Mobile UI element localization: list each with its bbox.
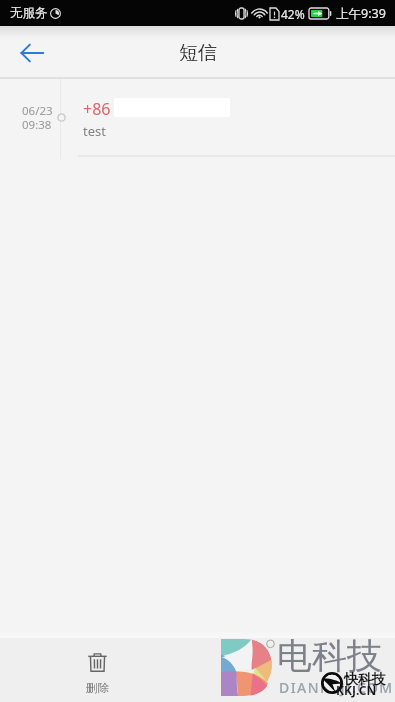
button[interactable]: Back <box>9 30 55 76</box>
staticText: 电科技 <box>277 634 382 678</box>
staticText: 42% <box>281 6 305 22</box>
staticText: KKJ.CN <box>336 682 377 698</box>
staticText: DIANKEJI.COM <box>279 678 394 697</box>
staticText: 删除 <box>86 681 109 695</box>
staticText: 06/23 <box>22 103 53 119</box>
staticText: 09:38 <box>22 117 52 133</box>
staticText: test <box>83 122 106 140</box>
button[interactable]: 删除 <box>74 648 121 700</box>
staticText: 快科技 <box>344 671 386 689</box>
staticText: 上午9:39 <box>336 5 386 22</box>
staticText: 无服务 <box>10 5 48 21</box>
staticText: +86 <box>83 98 111 120</box>
button[interactable]: 06/23 <box>0 79 395 164</box>
staticText: 短信 <box>179 41 217 65</box>
other: KKJ logo <box>321 672 343 694</box>
